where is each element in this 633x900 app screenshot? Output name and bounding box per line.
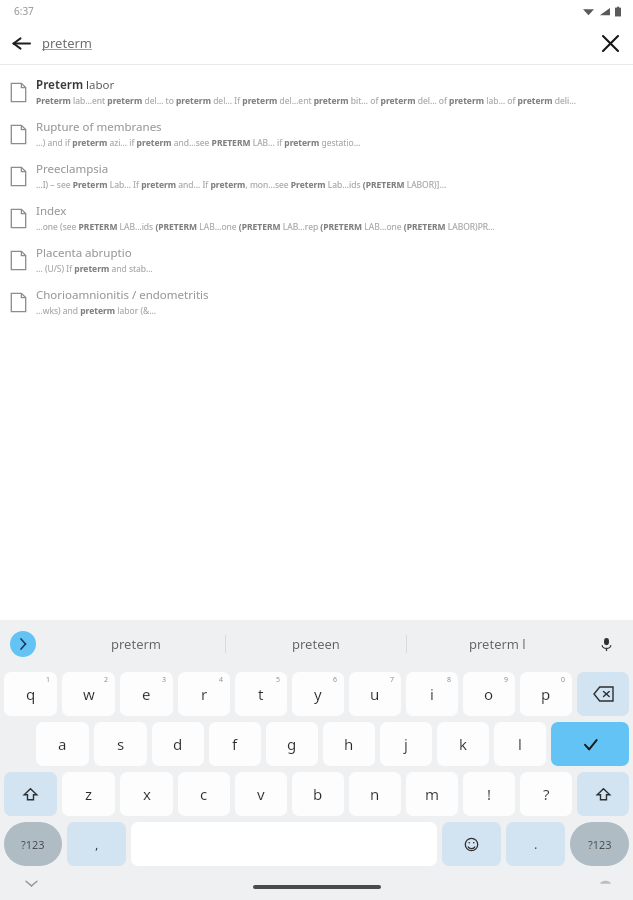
button[interactable]: a (36, 722, 89, 766)
staticText: m (425, 784, 440, 804)
staticText: 8 (447, 675, 452, 685)
button[interactable]: Index (0, 197, 633, 239)
staticText: 4 (219, 675, 224, 685)
button[interactable]: i (406, 672, 458, 716)
staticText: …wks) and preterm labor (&… (36, 305, 156, 317)
button[interactable]: ! (463, 772, 515, 816)
button[interactable]: h (323, 722, 375, 766)
staticText: a (58, 734, 67, 754)
button[interactable]: r (178, 672, 230, 716)
button[interactable]: Back (0, 22, 42, 64)
button[interactable]: u (349, 672, 401, 716)
staticText: c (200, 784, 208, 804)
staticText: 3 (162, 675, 167, 685)
button[interactable]: y (292, 672, 344, 716)
staticText: r (201, 684, 208, 704)
button[interactable]: z (62, 772, 115, 816)
button[interactable]: l (494, 722, 546, 766)
staticText: ! (487, 784, 492, 804)
button[interactable]: Preeclampsia (0, 155, 633, 197)
button[interactable]: n (349, 772, 401, 816)
staticText: … (U/S) If preterm and stab… (36, 263, 153, 275)
staticText: y (314, 684, 322, 704)
button[interactable]: Enter (551, 722, 629, 766)
button[interactable]: ? (520, 772, 572, 816)
button[interactable]: Preterm labor (0, 71, 633, 113)
staticText: preterm l (469, 635, 526, 653)
staticText: z (85, 784, 93, 804)
staticText: 6 (333, 675, 338, 685)
button[interactable]: t (235, 672, 287, 716)
button[interactable]: Hide keyboard (18, 870, 44, 896)
staticText: ?123 (588, 837, 612, 852)
staticText: v (257, 784, 265, 804)
staticText: h (344, 734, 354, 754)
button[interactable]: Shift (577, 772, 629, 816)
button[interactable]: f (209, 722, 261, 766)
staticText: f (232, 734, 238, 754)
button[interactable]: Chorioamnionitis / endometritis (0, 281, 633, 323)
staticText: i (430, 684, 434, 704)
button[interactable]: preteen (226, 620, 406, 668)
button[interactable]: Placenta abruptio (0, 239, 633, 281)
staticText: t (258, 684, 264, 704)
button[interactable]: preterm l (407, 620, 587, 668)
button[interactable]: q (4, 672, 57, 716)
button[interactable]: ?123 (4, 822, 62, 866)
button[interactable]: Emoji (442, 822, 501, 866)
button[interactable]: More suggestions (10, 631, 36, 657)
staticText: 6:37 (14, 4, 34, 18)
button[interactable]: Clear search (587, 22, 633, 64)
button[interactable]: Shift (4, 772, 57, 816)
button[interactable]: x (120, 772, 173, 816)
button[interactable]: Keyboard settings (593, 871, 617, 895)
button[interactable]: p (520, 672, 572, 716)
staticText: e (142, 684, 151, 704)
staticText: preterm (111, 635, 161, 653)
staticText: n (370, 784, 380, 804)
button[interactable]: Backspace (577, 672, 629, 716)
staticText: 9 (504, 675, 509, 685)
staticText: 7 (390, 675, 395, 685)
staticText: Preeclampsia (36, 161, 109, 177)
staticText: u (370, 684, 380, 704)
button[interactable]: c (178, 772, 230, 816)
button[interactable]: Voice input (591, 629, 621, 659)
staticText: …one (see PRETERM LAB…ids (PRETERM LAB…o… (36, 221, 495, 233)
staticText: . (534, 835, 538, 853)
staticText: s (117, 734, 125, 754)
staticText: preteen (292, 635, 340, 653)
staticText: , (95, 835, 99, 853)
button[interactable]: ?123 (570, 822, 629, 866)
staticText: Preterm labor (36, 77, 115, 93)
staticText: l (518, 734, 522, 754)
button[interactable]: . (506, 822, 565, 866)
staticText: Index (36, 203, 67, 219)
button[interactable]: j (380, 722, 432, 766)
button[interactable]: , (67, 822, 126, 866)
button[interactable]: e (120, 672, 173, 716)
staticText: Chorioamnionitis / endometritis (36, 287, 209, 303)
button[interactable]: m (406, 772, 458, 816)
button[interactable]: v (235, 772, 287, 816)
button[interactable]: g (266, 722, 318, 766)
staticText: 0 (561, 675, 566, 685)
button[interactable]: preterm (46, 620, 225, 668)
button[interactable]: k (437, 722, 489, 766)
button[interactable]: w (62, 672, 115, 716)
staticText: b (313, 784, 323, 804)
button[interactable]: s (94, 722, 147, 766)
staticText: …I) – see Preterm Lab… If preterm and… I… (36, 179, 447, 191)
button[interactable]: d (152, 722, 204, 766)
button[interactable]: Rupture of membranes (0, 113, 633, 155)
button[interactable]: o (463, 672, 515, 716)
staticText: p (541, 684, 551, 704)
staticText: …) and if preterm azi… if preterm and…se… (36, 137, 361, 149)
staticText: preterm (42, 34, 92, 52)
staticText: 1 (46, 675, 51, 685)
button[interactable]: b (292, 772, 344, 816)
staticText: Preterm lab…ent preterm del… to preterm … (36, 95, 576, 107)
staticText: w (83, 684, 95, 704)
staticText: o (484, 684, 494, 704)
